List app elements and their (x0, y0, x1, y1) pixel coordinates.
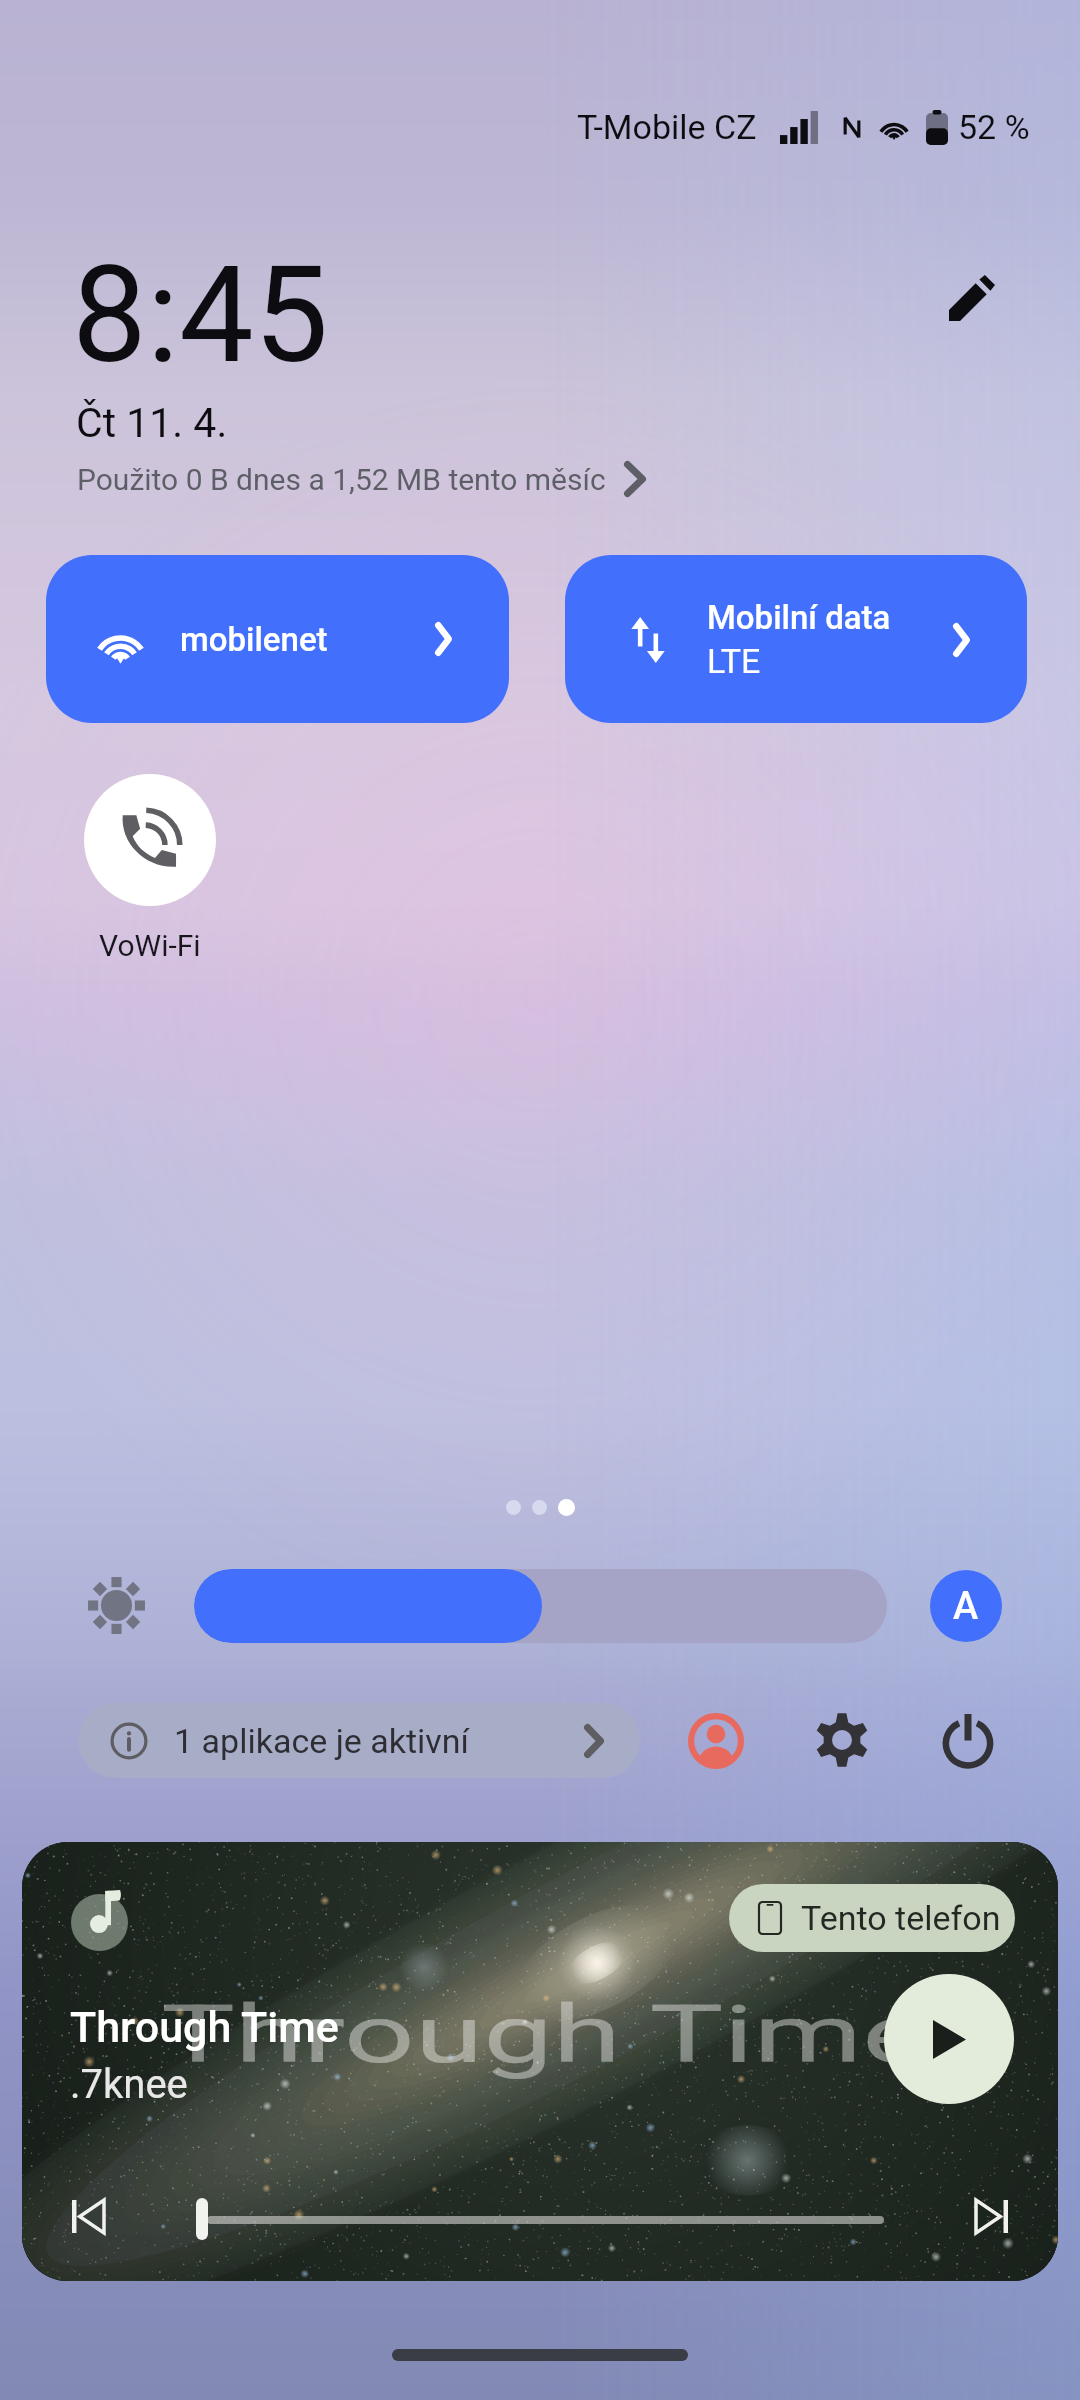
button[interactable]: mobilenet (46, 555, 509, 723)
staticText: Mobilní data (707, 598, 891, 637)
staticText: Through Time (161, 1988, 928, 2082)
staticText: 8:45 (72, 238, 329, 394)
button[interactable]: VoWi-Fi (84, 774, 216, 963)
staticText: 1 aplikace je aktivní (174, 1721, 470, 1761)
staticText: T-Mobile CZ (577, 107, 757, 147)
button[interactable]: Další (960, 2184, 1024, 2248)
button[interactable]: Použito 0 B dnes a 1,52 MB tento měsíc (77, 461, 646, 497)
staticText: Čt 11. 4. (76, 399, 228, 447)
button[interactable]: Through Time (22, 1842, 1058, 2281)
staticText: Použito 0 B dnes a 1,52 MB tento měsíc (77, 462, 606, 497)
button[interactable]: 1 aplikace je aktivní (78, 1703, 640, 1778)
button[interactable] (194, 1569, 887, 1643)
button[interactable]: Vypnout (930, 1702, 1006, 1778)
button[interactable]: Přehrát (884, 1974, 1014, 2104)
button[interactable]: A (930, 1570, 1002, 1642)
button[interactable]: Upravit (934, 260, 1010, 336)
staticText: .7knee (70, 2061, 188, 2108)
staticText: LTE (707, 641, 761, 681)
staticText: A (953, 1584, 979, 1629)
staticText: mobilenet (180, 620, 328, 659)
staticText: 52 % (958, 107, 1030, 147)
button[interactable]: Tento telefon (729, 1884, 1015, 1952)
button[interactable]: Účet (678, 1703, 754, 1779)
staticText: Through Time (70, 2002, 339, 2052)
staticText: VoWi-Fi (99, 928, 201, 963)
button[interactable]: Mobilní data (565, 555, 1027, 723)
button[interactable]: Nastavení (804, 1702, 880, 1778)
staticText: Tento telefon (801, 1898, 1001, 1938)
button[interactable]: Předchozí (56, 2184, 120, 2248)
